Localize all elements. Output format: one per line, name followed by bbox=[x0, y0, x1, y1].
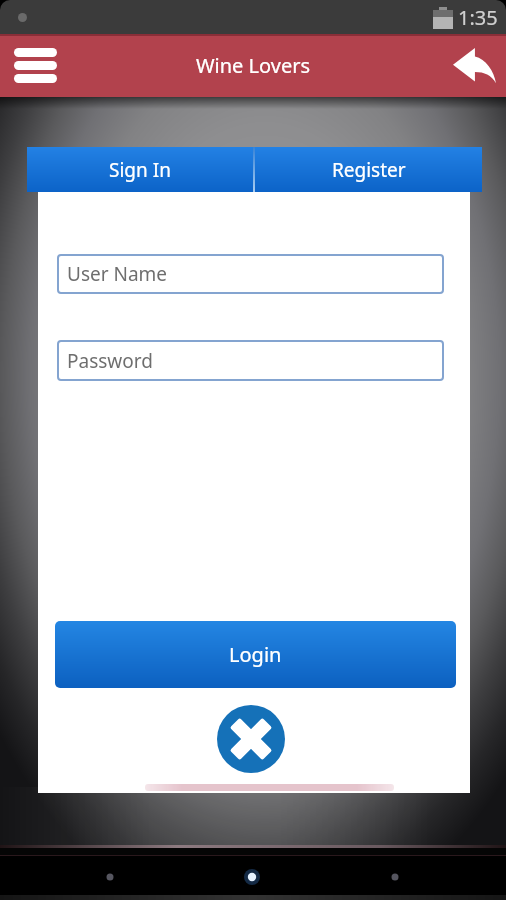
staticText: Password bbox=[67, 348, 153, 374]
staticText: Register bbox=[332, 157, 406, 183]
button[interactable]: Sign In bbox=[27, 147, 253, 192]
button[interactable]: Password bbox=[57, 340, 444, 381]
button[interactable] bbox=[217, 705, 285, 773]
staticText: Login bbox=[229, 641, 282, 668]
button[interactable]: Login bbox=[55, 621, 456, 688]
button[interactable] bbox=[453, 47, 497, 85]
button[interactable]: User Name bbox=[57, 254, 444, 294]
staticText: Sign In bbox=[109, 157, 171, 183]
button[interactable]: Register bbox=[255, 147, 482, 192]
staticText: User Name bbox=[67, 261, 168, 287]
button[interactable] bbox=[14, 48, 57, 83]
staticText: 1:35 bbox=[458, 4, 498, 31]
staticText: Wine Lovers bbox=[196, 52, 311, 79]
